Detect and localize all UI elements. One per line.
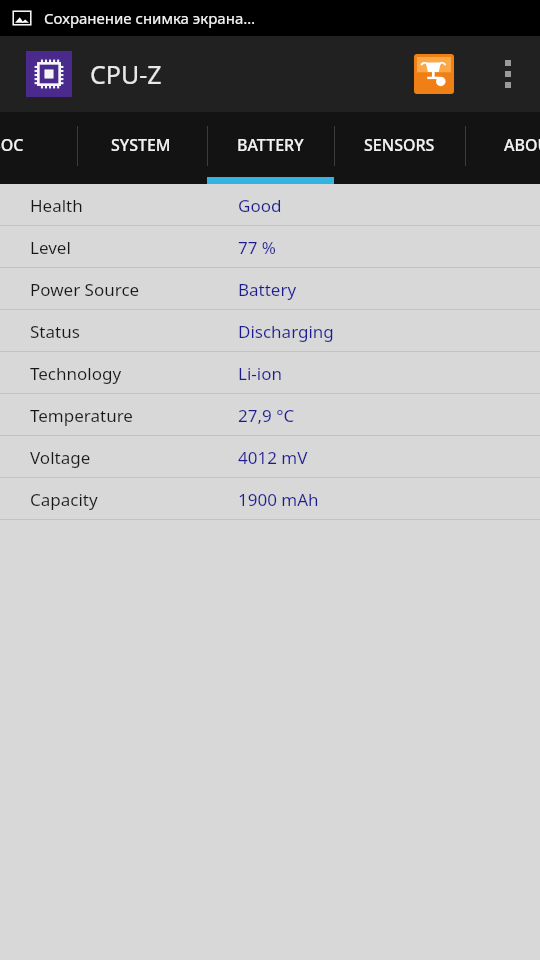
staticText: SENSORS [364,134,435,156]
staticText: 77 % [238,236,276,259]
staticText: Good [238,194,282,217]
button[interactable]: Technology [0,352,540,394]
staticText: CPU-Z [90,57,162,91]
button[interactable]: Power Source [0,268,540,310]
button[interactable]: Status [0,310,540,352]
button[interactable]: Voltage [0,436,540,478]
button[interactable]: Capacity [0,478,540,520]
button[interactable]: SOC [0,112,72,177]
staticText: Voltage [30,446,91,469]
button[interactable]: SYSTEM [77,112,205,177]
button[interactable]: Benchmark [414,54,454,94]
staticText: Technology [30,362,122,385]
staticText: 4012 mV [238,446,308,469]
button[interactable]: ABOUT [467,112,540,177]
staticText: Health [30,194,83,217]
staticText: Status [30,320,80,343]
staticText: Battery [238,278,297,301]
staticText: SYSTEM [111,134,171,156]
button[interactable] [26,51,72,97]
staticText: Li-ion [238,362,282,385]
staticText: Level [30,236,71,259]
button[interactable]: Level [0,226,540,268]
button[interactable]: BATTERY [206,112,334,177]
button[interactable]: SENSORS [335,112,463,177]
staticText: SOC [0,134,24,156]
staticText: ABOUT [504,134,540,156]
button[interactable]: Health [0,184,540,226]
staticText: 27,9 °C [238,404,295,427]
button[interactable]: More options [496,50,520,98]
staticText: Сохранение снимка экрана… [44,8,256,28]
staticText: Power Source [30,278,140,301]
button[interactable]: Temperature [0,394,540,436]
staticText: Capacity [30,488,98,511]
staticText: Temperature [30,404,133,427]
staticText: BATTERY [237,134,304,156]
staticText: Discharging [238,320,334,343]
staticText: 1900 mAh [238,488,319,511]
